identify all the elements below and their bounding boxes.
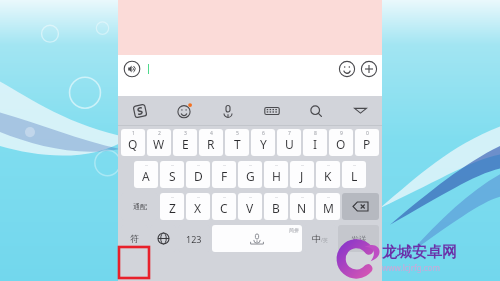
button[interactable]: Space xyxy=(212,225,302,252)
button[interactable]: D xyxy=(186,161,210,188)
button[interactable]: X xyxy=(186,193,210,220)
staticText: P xyxy=(363,136,371,152)
staticText: L xyxy=(351,168,358,184)
staticText: M xyxy=(323,200,334,216)
button[interactable]: 中 xyxy=(304,225,336,252)
staticText: W xyxy=(153,136,165,152)
button[interactable]: Z xyxy=(160,193,184,220)
staticText: U xyxy=(285,136,294,152)
button[interactable]: Keyboard xyxy=(250,96,294,125)
staticText: www.lcjrfg.com xyxy=(382,262,440,273)
staticText: 123 xyxy=(186,233,202,245)
staticText: /英 xyxy=(321,237,328,244)
staticText: 符 xyxy=(130,233,139,244)
staticText: 4 xyxy=(210,130,213,137)
staticText: H xyxy=(272,168,281,184)
button[interactable]: K xyxy=(316,161,340,188)
staticText: R xyxy=(207,136,215,152)
button[interactable]: Hide keyboard xyxy=(338,96,382,125)
button[interactable]: Sogou input xyxy=(118,96,162,125)
button[interactable]: 3 xyxy=(173,129,197,156)
button[interactable]: V xyxy=(238,193,262,220)
button[interactable]: Emoji xyxy=(338,60,356,78)
staticText: F xyxy=(221,168,228,184)
staticText: 发送 xyxy=(351,234,367,244)
staticText: A xyxy=(142,168,150,184)
staticText: 1 xyxy=(132,130,135,137)
staticText: 龙城安卓网 xyxy=(382,243,457,262)
button[interactable]: 8 xyxy=(303,129,327,156)
staticText: 2 xyxy=(158,130,161,137)
staticText: B xyxy=(272,200,280,216)
button[interactable]: Switch language xyxy=(150,225,176,252)
staticText: 7 xyxy=(288,130,291,137)
button[interactable]: N xyxy=(290,193,314,220)
button[interactable]: 0 xyxy=(355,129,379,156)
staticText: J xyxy=(300,168,304,184)
button[interactable]: 2 xyxy=(147,129,171,156)
button[interactable]: 发送 xyxy=(338,225,379,252)
staticText: 0 xyxy=(366,130,369,137)
staticText: 简拼 xyxy=(289,227,299,233)
staticText: 中 xyxy=(312,233,321,244)
staticText: G xyxy=(246,168,255,184)
button[interactable]: 5 xyxy=(225,129,249,156)
button[interactable]: Voice xyxy=(206,96,250,125)
staticText: E xyxy=(182,136,189,152)
button[interactable]: F xyxy=(212,161,236,188)
button[interactable]: 7 xyxy=(277,129,301,156)
button[interactable]: Search xyxy=(294,96,338,125)
staticText: O xyxy=(336,136,346,152)
button[interactable]: Emoji xyxy=(162,96,206,125)
button[interactable]: G xyxy=(238,161,262,188)
button[interactable]: 1 xyxy=(121,129,145,156)
button[interactable]: 4 xyxy=(199,129,223,156)
staticText: X xyxy=(194,200,202,216)
button[interactable]: A xyxy=(134,161,158,188)
button[interactable] xyxy=(145,61,332,77)
staticText: 5 xyxy=(236,130,239,137)
button[interactable]: 符 xyxy=(121,225,148,252)
button[interactable]: 6 xyxy=(251,129,275,156)
staticText: C xyxy=(220,200,228,216)
staticText: Q xyxy=(128,136,138,152)
button[interactable]: More options xyxy=(360,60,378,78)
button[interactable]: S xyxy=(160,161,184,188)
button[interactable]: C xyxy=(212,193,236,220)
staticText: 3 xyxy=(184,130,187,137)
staticText: N xyxy=(297,200,307,216)
staticText: 6 xyxy=(262,130,265,137)
staticText: 9 xyxy=(340,130,343,137)
staticText: T xyxy=(234,136,241,152)
button[interactable]: H xyxy=(264,161,288,188)
staticText: K xyxy=(324,168,332,184)
button[interactable]: J xyxy=(290,161,314,188)
staticText: 通配 xyxy=(133,202,147,211)
button[interactable]: Voice input xyxy=(123,60,141,78)
staticText: D xyxy=(194,168,203,184)
button[interactable]: L xyxy=(342,161,366,188)
staticText: I xyxy=(313,136,318,152)
staticText: V xyxy=(246,200,254,216)
staticText: 8 xyxy=(314,130,317,137)
staticText: S xyxy=(169,168,176,184)
staticText: Z xyxy=(169,200,176,216)
button[interactable]: 通配 xyxy=(121,193,158,220)
button[interactable]: 9 xyxy=(329,129,353,156)
staticText: Y xyxy=(260,136,267,152)
button[interactable]: B xyxy=(264,193,288,220)
button[interactable]: Backspace xyxy=(342,193,379,220)
button[interactable]: 123 xyxy=(178,225,210,252)
button[interactable]: M xyxy=(316,193,340,220)
